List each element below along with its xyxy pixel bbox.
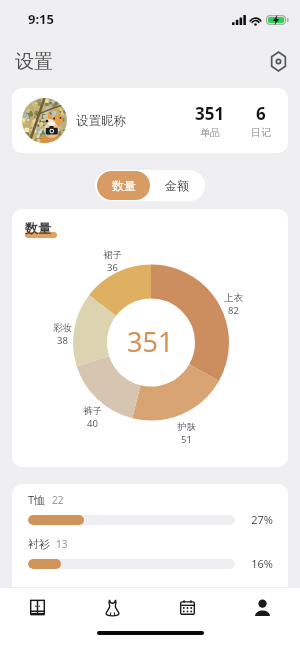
staticText: 6 <box>256 102 266 125</box>
staticText: 彩妆 <box>53 322 72 334</box>
staticText: 裤子 <box>83 405 102 417</box>
button[interactable]: Settings <box>262 45 294 77</box>
staticText: 单品 <box>200 126 220 139</box>
button[interactable]: Profile <box>225 588 300 625</box>
staticText: 衬衫 <box>28 537 50 551</box>
staticText: 日记 <box>251 126 271 139</box>
staticText: 51 <box>181 433 192 446</box>
button[interactable]: 金额 <box>150 171 203 200</box>
staticText: 351 <box>195 102 225 125</box>
staticText: 上衣 <box>224 292 243 304</box>
button[interactable]: Calendar <box>150 588 225 625</box>
button[interactable]: 351 <box>187 102 232 139</box>
staticText: T恤 <box>28 492 46 507</box>
staticText: 护肤 <box>177 421 196 433</box>
staticText: 82 <box>228 304 239 317</box>
staticText: 设置 <box>15 50 53 74</box>
staticText: 38 <box>57 334 68 347</box>
button[interactable]: Outfits <box>75 588 150 625</box>
button[interactable]: 数量 <box>97 171 150 200</box>
staticText: 数量 <box>25 220 51 236</box>
staticText: 裙子 <box>103 249 122 261</box>
staticText: 40 <box>87 417 98 430</box>
staticText: 351 <box>127 323 174 360</box>
staticText: 36 <box>107 261 118 274</box>
staticText: 金额 <box>165 178 189 193</box>
staticText: 数量 <box>112 178 136 193</box>
staticText: 13 <box>56 537 68 551</box>
staticText: 27% <box>243 512 273 527</box>
staticText: 16% <box>243 556 273 571</box>
staticText: 9:15 <box>28 10 54 28</box>
staticText: 22 <box>52 493 64 507</box>
button[interactable]: 设置昵称 <box>12 88 288 153</box>
button[interactable]: 6 <box>238 102 283 139</box>
button[interactable]: Wardrobe <box>0 588 75 625</box>
staticText: 设置昵称 <box>76 113 126 129</box>
